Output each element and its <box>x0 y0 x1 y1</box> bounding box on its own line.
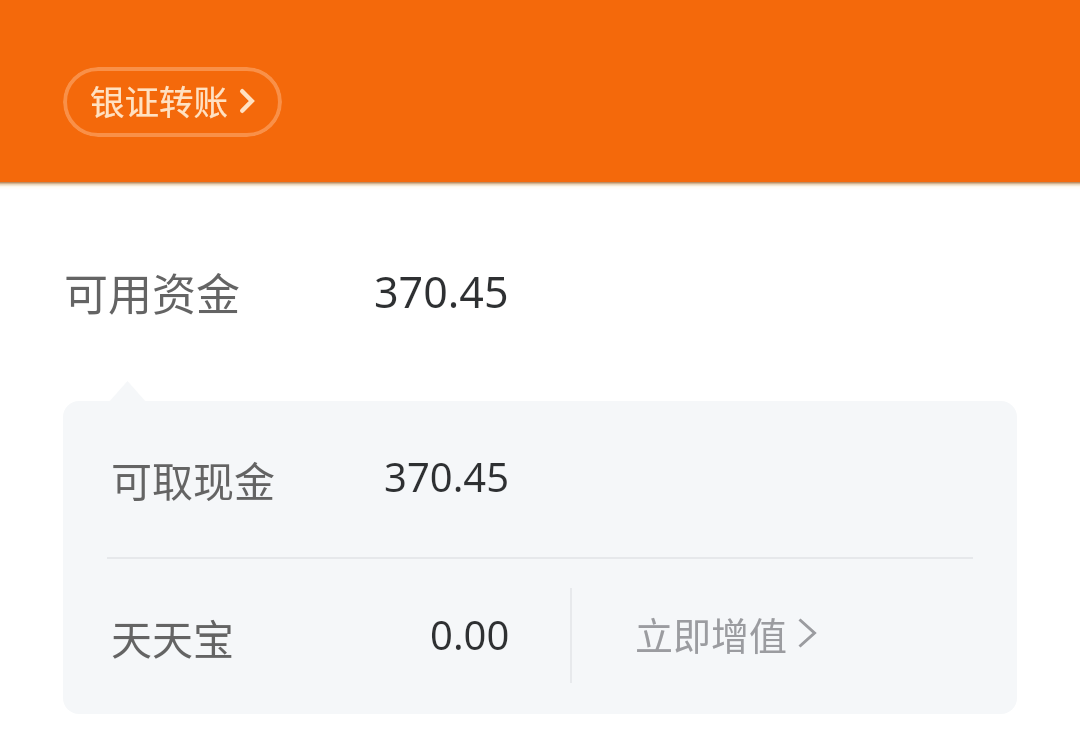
button[interactable]: 天天宝 <box>63 558 570 714</box>
button[interactable]: 立即增值 <box>588 589 858 677</box>
button[interactable]: 可用资金 <box>0 246 1080 336</box>
staticText: 银证转账 <box>90 75 228 125</box>
staticText: 立即增值 <box>635 606 788 661</box>
other: 立即增值 <box>798 618 816 648</box>
staticText: 可取现金 <box>111 449 275 508</box>
staticText: 370.45 <box>384 449 510 503</box>
button[interactable]: 银证转账 <box>63 67 282 137</box>
button[interactable]: 可取现金 <box>63 401 1017 557</box>
staticText: 可用资金 <box>64 260 240 324</box>
staticText: 天天宝 <box>111 607 234 666</box>
staticText: 0.00 <box>430 607 510 661</box>
staticText: 370.45 <box>374 262 509 321</box>
